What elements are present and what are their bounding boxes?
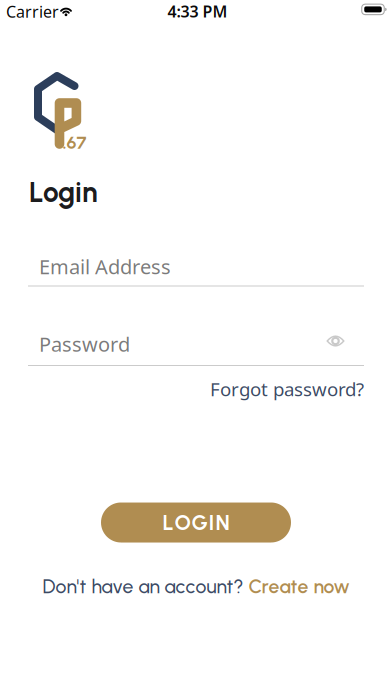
button[interactable]: Password [28, 331, 364, 371]
staticText: L O G I N [162, 510, 229, 535]
staticText: Forgot password? [210, 377, 364, 401]
staticText: Don't have an account? [42, 575, 243, 598]
staticText: 4:33 PM [167, 1, 227, 22]
staticText: Create now [248, 575, 349, 598]
staticText: .67 [62, 132, 86, 153]
staticText: Email Address [39, 253, 171, 280]
button[interactable]: L O G I N [101, 502, 291, 542]
staticText: Password [39, 331, 130, 357]
button[interactable]: Email Address [28, 252, 364, 292]
staticText: Login [29, 175, 98, 209]
button[interactable]: Don't have an account? [42, 575, 349, 598]
button[interactable]: Forgot password? [210, 377, 364, 401]
staticText: Carrier [6, 1, 59, 22]
